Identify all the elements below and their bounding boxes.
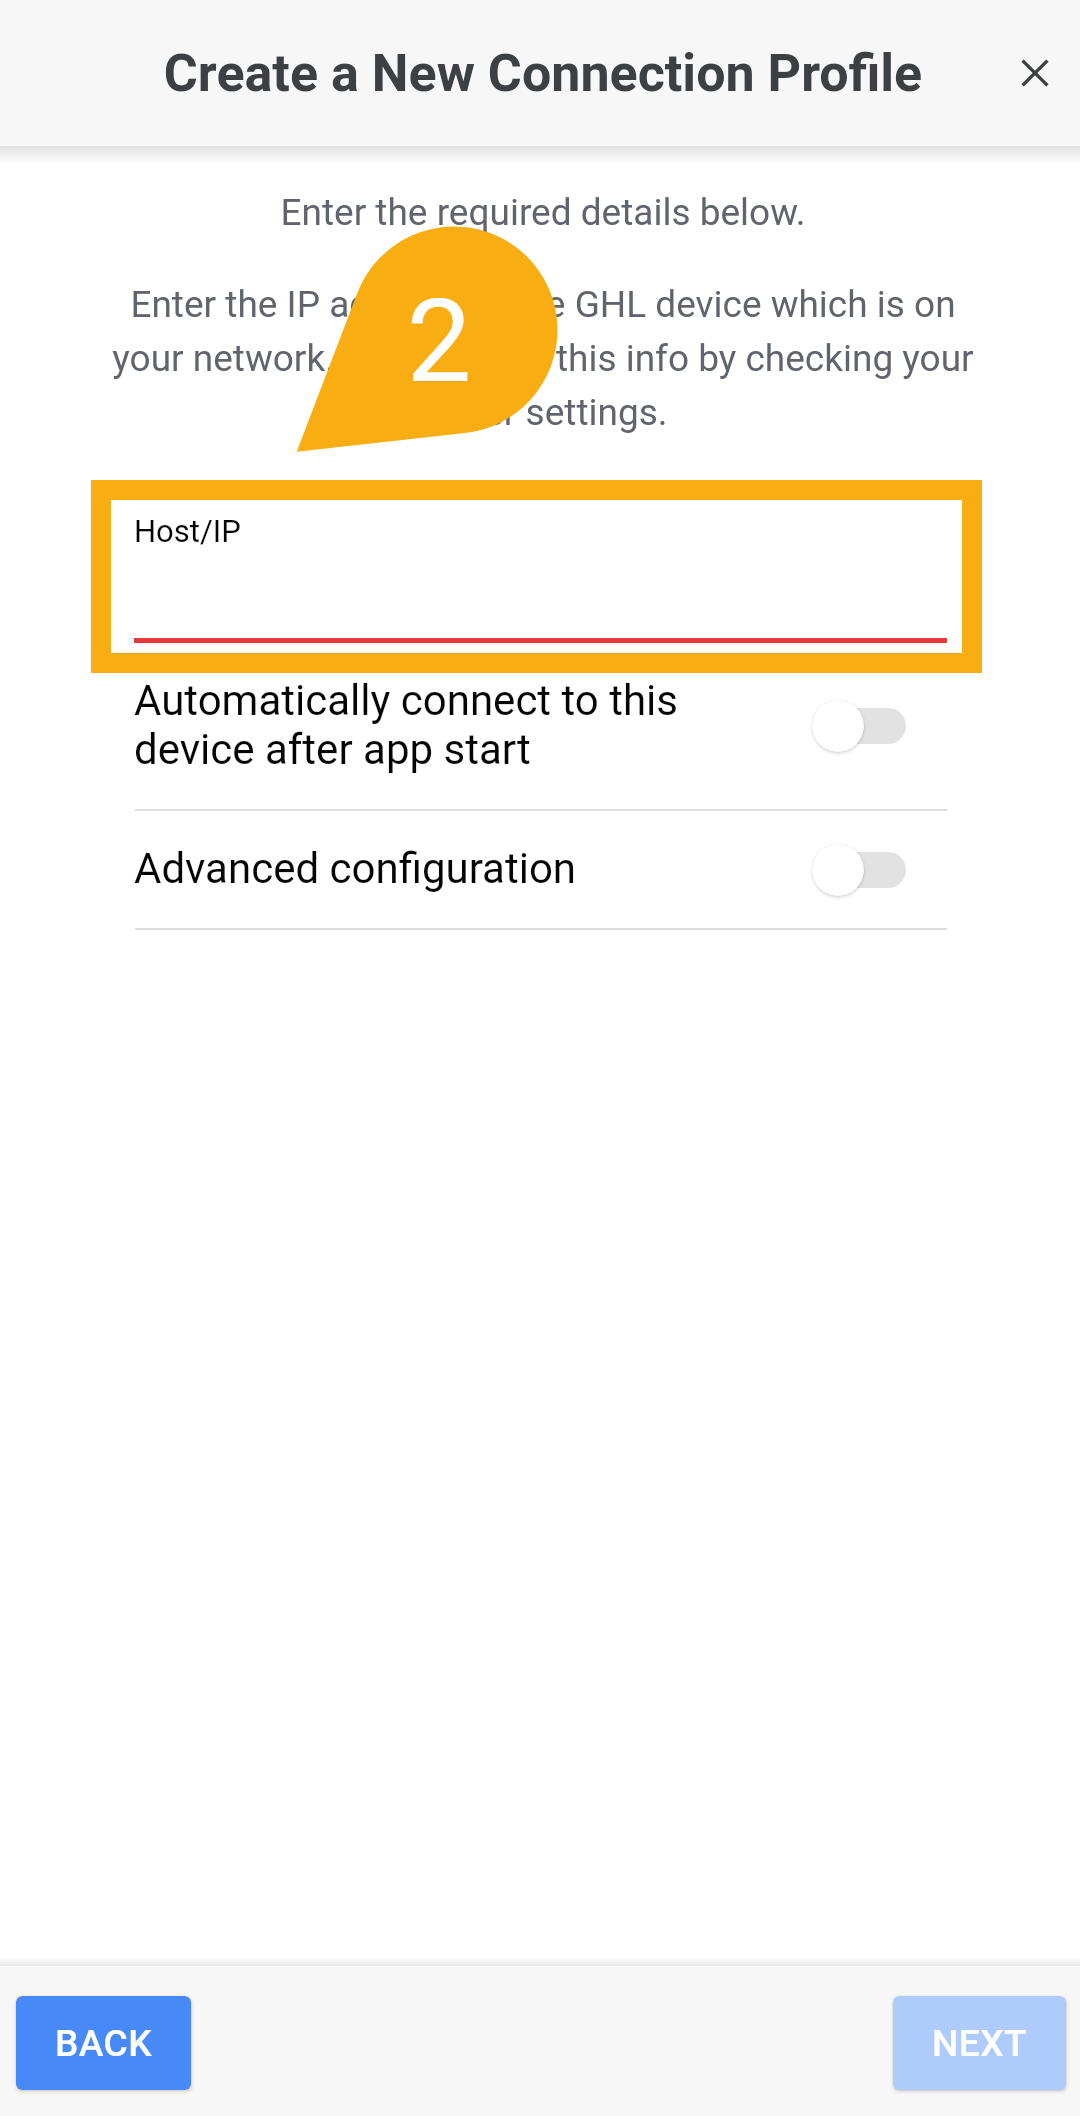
button[interactable]: Advanced configuration (812, 844, 906, 896)
staticText: Host/IP (134, 513, 241, 549)
button[interactable] (0, 673, 1080, 810)
staticText: device after app start (134, 725, 531, 774)
button[interactable] (91, 480, 982, 673)
staticText: Enter the required details below. (3, 191, 1080, 234)
button[interactable]: NEXT (893, 1996, 1066, 2090)
staticText: BACK (55, 2022, 153, 2065)
button[interactable]: Close (995, 33, 1075, 113)
staticText: Enter the IP address of the GHL device w… (3, 283, 1080, 326)
button[interactable] (0, 812, 1080, 929)
staticText: 2 (339, 274, 539, 409)
button[interactable]: BACK (16, 1996, 191, 2090)
staticText: Advanced configuration (134, 844, 577, 893)
staticText: router settings. (3, 391, 1080, 434)
staticText: Create a New Connection Profile (3, 43, 1080, 104)
staticText: NEXT (932, 2022, 1028, 2065)
staticText: Automatically connect to this (134, 676, 678, 725)
staticText: your network. You can find this info by … (3, 337, 1080, 380)
button[interactable]: Automatically connect to this device aft… (812, 700, 906, 752)
